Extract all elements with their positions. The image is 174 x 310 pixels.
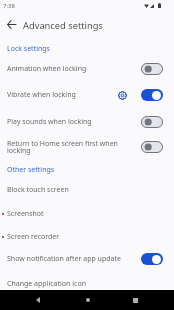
- staticText: Other settings: [7, 165, 55, 175]
- button[interactable]: Return to Home screen first when locking: [0, 136, 174, 158]
- staticText: Block touch screen: [7, 185, 69, 195]
- staticText: Vibrate when locking: [7, 90, 118, 100]
- staticText: Screen recorder: [7, 232, 60, 242]
- button[interactable]: Toggle off: [141, 141, 163, 153]
- button[interactable]: Toggle off: [141, 63, 163, 75]
- button[interactable]: Animation when locking: [0, 62, 174, 76]
- button[interactable]: Toggle on: [141, 89, 163, 101]
- button[interactable]: Back: [27, 290, 48, 310]
- button[interactable]: Show notification after app update: [0, 252, 174, 266]
- button[interactable]: Toggle off: [141, 116, 163, 128]
- button[interactable]: Screen recorder: [0, 230, 174, 244]
- staticText: Change application icon: [7, 279, 86, 289]
- staticText: Advanced settings: [23, 19, 103, 32]
- button[interactable]: Back: [3, 16, 20, 33]
- staticText: Animation when locking: [7, 64, 141, 74]
- staticText: Lock settings: [7, 44, 50, 54]
- button[interactable]: Home: [77, 290, 98, 310]
- staticText: Return to Home screen first when locking: [7, 139, 118, 156]
- staticText: 7:38: [3, 2, 15, 10]
- button[interactable]: Block touch screen: [0, 183, 174, 197]
- button[interactable]: Screenshot: [0, 207, 174, 221]
- button[interactable]: Change application icon: [0, 277, 174, 291]
- staticText: Screenshot: [7, 209, 44, 219]
- staticText: Play sounds when locking: [7, 117, 141, 127]
- button[interactable]: Recents: [125, 290, 146, 310]
- staticText: Show notification after app update: [7, 254, 141, 264]
- button[interactable]: Vibrate when locking: [0, 88, 174, 102]
- button[interactable]: Toggle on: [141, 253, 163, 265]
- button[interactable]: Play sounds when locking: [0, 115, 174, 129]
